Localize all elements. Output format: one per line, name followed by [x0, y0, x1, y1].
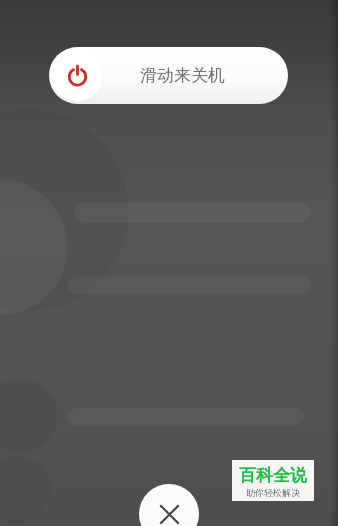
staticText: 助你轻松解决	[246, 487, 300, 498]
button[interactable]: Slide to power off	[52, 50, 103, 101]
button[interactable]: Cancel	[139, 484, 199, 526]
staticText: 百科全说	[239, 465, 307, 486]
staticText: 滑动来关机	[140, 65, 225, 86]
button[interactable]: 滑动来关机	[49, 47, 288, 104]
